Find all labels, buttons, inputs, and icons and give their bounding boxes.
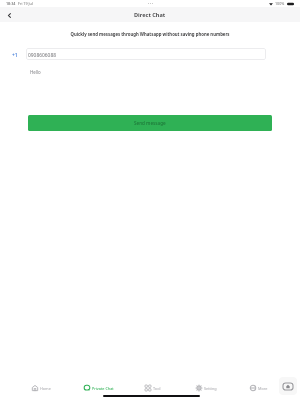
button[interactable]: Tool bbox=[133, 382, 173, 394]
staticText: Direct Chat bbox=[134, 11, 166, 19]
staticText: Hello bbox=[30, 69, 41, 75]
staticText: More bbox=[258, 386, 268, 391]
button[interactable]: Send message bbox=[28, 115, 272, 131]
staticText: Send message bbox=[134, 120, 166, 126]
button[interactable]: Private Chat bbox=[69, 382, 129, 394]
button[interactable]: Setting bbox=[184, 382, 228, 394]
button[interactable]: Hello bbox=[26, 66, 266, 78]
button[interactable]: Screenshot bbox=[279, 377, 297, 395]
button[interactable]: Back bbox=[4, 10, 14, 20]
staticText: Setting bbox=[204, 386, 217, 391]
staticText: Fri 19 Jul bbox=[18, 1, 33, 6]
staticText: Quickly send messages through Whatsapp w… bbox=[0, 31, 300, 37]
staticText: 0908606088 bbox=[28, 52, 56, 59]
staticText: Private Chat bbox=[92, 386, 114, 391]
staticText: 18:34 bbox=[6, 1, 16, 6]
staticText: 100% bbox=[275, 1, 285, 6]
staticText: Home bbox=[40, 386, 51, 391]
staticText: +1 bbox=[12, 52, 18, 59]
button[interactable]: 0908606088 bbox=[26, 48, 266, 60]
staticText: Tool bbox=[153, 386, 161, 391]
button[interactable]: More bbox=[239, 382, 279, 394]
button[interactable]: Home bbox=[21, 382, 61, 394]
